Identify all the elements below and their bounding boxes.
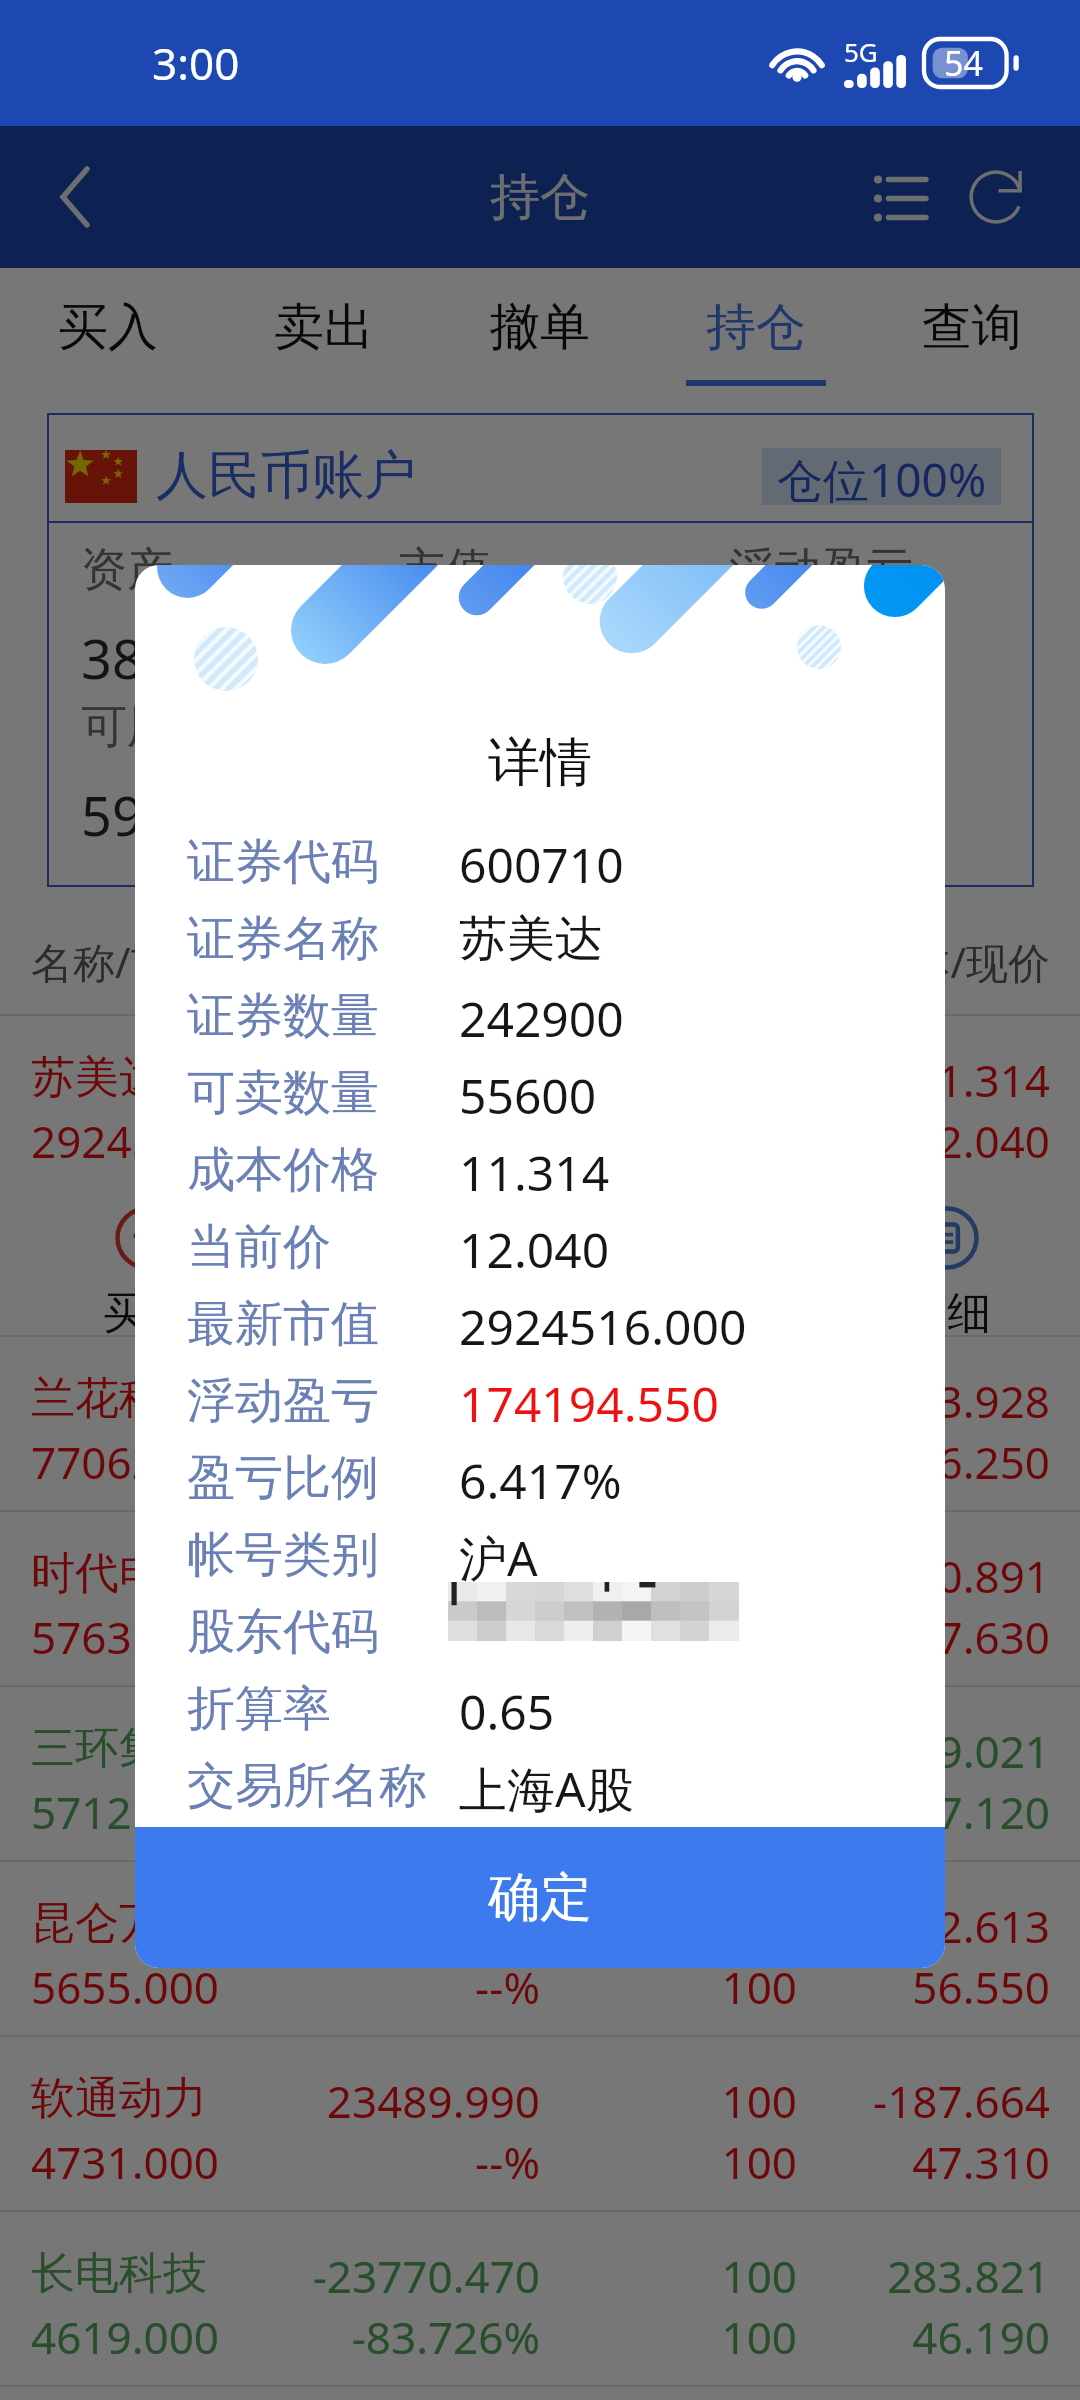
staticText: 100	[540, 1896, 797, 1956]
button[interactable]: 撤单	[432, 268, 648, 398]
staticText: 200	[540, 1432, 797, 1492]
staticText: 100	[540, 1957, 797, 2017]
staticText: 详情	[135, 730, 945, 796]
staticText: 市值	[399, 541, 491, 599]
staticText: 6.417%	[459, 1448, 622, 1513]
staticText: 100	[540, 2132, 797, 2192]
staticText: 600710	[459, 832, 624, 897]
staticText: 软通动力	[31, 2071, 255, 2126]
staticText: 10.891	[797, 1546, 1050, 1606]
staticText: 浮动盈亏	[729, 541, 913, 599]
staticText: 1741...	[729, 621, 896, 695]
staticText: 598...	[81, 778, 218, 852]
staticText: 2924516.000	[31, 1111, 255, 1171]
staticText: -21.3%	[255, 1607, 540, 1667]
staticText: 上海A股	[459, 1756, 634, 1822]
button[interactable]: 苏美达	[0, 1016, 1080, 1337]
staticText: 12.040	[459, 1217, 610, 1282]
staticText: 交易所名称	[187, 1756, 427, 1816]
staticText: 买入	[103, 1286, 191, 1341]
staticText: --	[255, 1896, 540, 1956]
button[interactable]: 买入	[0, 268, 216, 398]
staticText: 折算率	[187, 1679, 331, 1739]
staticText: 5763.000	[31, 1607, 255, 1667]
button[interactable]: 长电科技	[0, 2212, 1080, 2387]
staticText: 苏美达	[459, 909, 603, 969]
staticText: 9.021	[797, 1721, 1050, 1781]
staticText: -187.664	[797, 2071, 1050, 2131]
staticText: 兰花科创	[31, 1371, 255, 1426]
staticText: 明细	[903, 1286, 991, 1341]
staticText: 长电科技	[31, 2246, 255, 2301]
staticText: 100	[540, 2071, 797, 2131]
staticText: -23770.470	[255, 2246, 540, 2306]
staticText: 成本价格	[187, 1140, 379, 1200]
button[interactable]: 查询	[864, 268, 1080, 398]
staticText: 资产	[81, 541, 173, 599]
staticText: 23489.990	[255, 2071, 540, 2131]
staticText: 查询	[922, 296, 1022, 359]
staticText: 242900	[459, 986, 624, 1051]
staticText: 浮动盈亏	[187, 1371, 379, 1431]
staticText: 仓位100%	[777, 448, 987, 505]
button[interactable]: 软通动力	[0, 2037, 1080, 2212]
staticText: 5712.000	[31, 1782, 255, 1842]
staticText: 56.550	[797, 1957, 1050, 2017]
button[interactable]: 昆仑万维	[0, 1862, 1080, 2037]
button[interactable]: 撤单	[447, 1204, 647, 1341]
staticText: -24.9%	[255, 1782, 540, 1842]
staticText: 4731.000	[31, 2132, 255, 2192]
button[interactable]: 确定	[135, 1827, 945, 1968]
staticText: 3806...	[81, 621, 248, 695]
staticText: 55600	[540, 1111, 797, 1171]
staticText: 11.314	[797, 1050, 1050, 1110]
staticText: 174194.550	[459, 1371, 719, 1436]
button[interactable]: Refresh	[948, 137, 1044, 257]
staticText: 盈亏比例	[187, 1448, 379, 1508]
staticText: 沪A	[459, 1525, 538, 1591]
staticText: 成本/现价	[797, 933, 1050, 990]
staticText: 三环集团	[31, 1721, 255, 1776]
staticText: 数量/可用	[540, 933, 797, 990]
staticText: 46.190	[797, 2307, 1050, 2367]
staticText: 5655.000	[31, 1957, 255, 2017]
staticText: 200	[540, 1371, 797, 1431]
button[interactable]: 行情	[647, 1204, 847, 1341]
staticText: 行情	[703, 1286, 791, 1341]
staticText: 最新市值	[187, 1294, 379, 1354]
staticText: 昆仑万维	[31, 1896, 255, 1951]
button[interactable]: 人民币账户	[47, 413, 1034, 887]
staticText: 时代电气	[31, 1546, 255, 1601]
button[interactable]: 买入	[47, 1204, 247, 1341]
staticText: --%	[255, 2132, 540, 2192]
staticText: 撤单	[503, 1286, 591, 1341]
staticText: 0.65	[459, 1679, 555, 1744]
staticText: 100	[540, 1721, 797, 1781]
staticText: 证券名称	[187, 909, 379, 969]
staticText: 证券代码	[187, 832, 379, 892]
staticText: 盈亏/比例	[255, 933, 540, 990]
button[interactable]: Back	[0, 126, 150, 268]
button[interactable]: 卖出	[216, 268, 432, 398]
staticText: 撤单	[490, 296, 590, 359]
staticText: 174194.550	[255, 1050, 540, 1110]
staticText: 5G	[844, 34, 878, 69]
button[interactable]: 卖出	[247, 1204, 447, 1341]
button[interactable]: List view	[852, 137, 948, 257]
staticText: 人民币账户	[156, 443, 416, 509]
staticText: -1901.000	[255, 1721, 540, 1781]
staticText: 47.310	[797, 2132, 1050, 2192]
staticText: -1563.700	[255, 1546, 540, 1606]
staticText: 7706200.000	[31, 1432, 255, 1492]
button[interactable]: 明细	[847, 1204, 1047, 1341]
staticText: 当前价	[187, 1217, 331, 1277]
button[interactable]: 时代电气	[0, 1512, 1080, 1687]
button[interactable]: 三环集团	[0, 1687, 1080, 1862]
staticText: 买入	[58, 296, 158, 359]
button[interactable]: 持仓	[648, 268, 864, 398]
staticText: 11.314	[459, 1140, 610, 1205]
staticText: 卖出	[274, 296, 374, 359]
staticText: 13.928	[797, 1371, 1050, 1431]
button[interactable]: 兰花科创	[0, 1337, 1080, 1512]
